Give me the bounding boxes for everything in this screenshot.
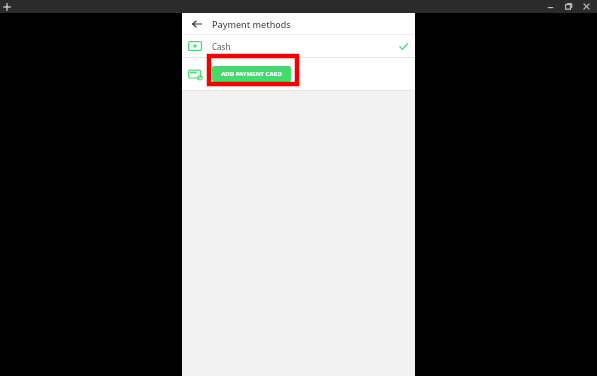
button[interactable]: Minimize	[546, 2, 555, 11]
button[interactable]: ADD PAYMENT CARD	[212, 66, 291, 82]
button[interactable]: Maximize	[564, 2, 573, 11]
staticText: ADD PAYMENT CARD	[221, 70, 282, 78]
button[interactable]: Close	[582, 2, 591, 11]
button[interactable]: Back	[189, 16, 205, 32]
button[interactable]: Cash	[182, 35, 415, 57]
staticText: Payment methods	[212, 18, 291, 30]
staticText: Cash	[212, 41, 231, 52]
